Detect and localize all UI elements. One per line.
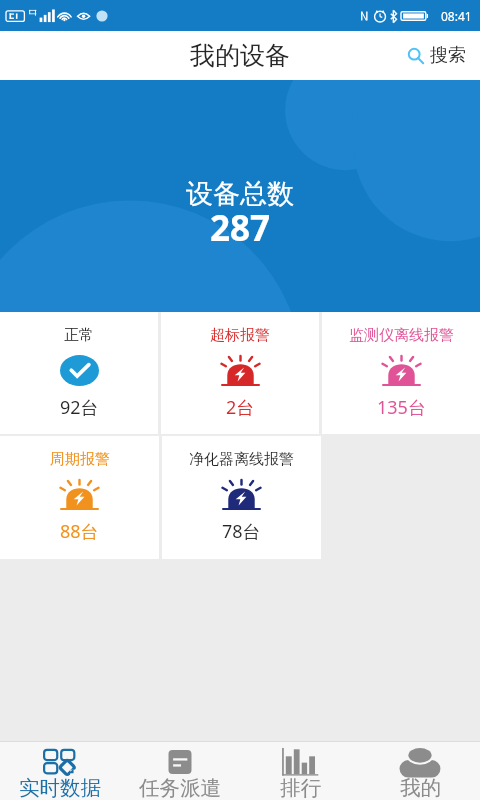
staticText: 287 <box>210 204 271 252</box>
staticText: 正常 <box>64 326 94 345</box>
staticText: 实时数据 <box>19 775 101 800</box>
staticText: 超标报警 <box>210 326 270 345</box>
button[interactable]: 搜索 <box>395 31 480 80</box>
staticText: 搜索 <box>430 44 466 67</box>
staticText: 我的 <box>400 775 441 800</box>
staticText: 我的设备 <box>190 40 290 71</box>
staticText: 监测仪离线报警 <box>349 326 454 345</box>
button[interactable]: 净化器离线报警 <box>162 436 321 559</box>
staticText: 任务派遣 <box>139 775 221 800</box>
staticText: 08:41 <box>441 8 472 24</box>
staticText: 设备总数 <box>186 177 294 211</box>
button[interactable]: 正常 <box>0 312 158 434</box>
staticText: 2台 <box>226 395 255 420</box>
button[interactable]: 周期报警 <box>0 436 159 559</box>
staticText: 88台 <box>60 519 99 544</box>
staticText: 135台 <box>377 395 426 420</box>
staticText: 净化器离线报警 <box>189 450 294 469</box>
button[interactable]: 监测仪离线报警 <box>322 312 480 434</box>
staticText: 92台 <box>60 395 99 420</box>
button[interactable]: 超标报警 <box>161 312 319 434</box>
button[interactable]: 排行 <box>240 742 360 800</box>
button[interactable]: 任务派遣 <box>120 742 240 800</box>
button[interactable]: 实时数据 <box>0 742 120 800</box>
staticText: 排行 <box>280 775 321 800</box>
staticText: 78台 <box>222 519 261 544</box>
button[interactable]: 我的 <box>360 742 480 800</box>
staticText: 周期报警 <box>50 450 110 469</box>
